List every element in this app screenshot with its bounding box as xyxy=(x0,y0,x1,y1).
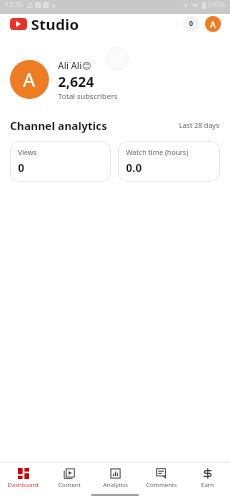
staticText: Studio xyxy=(31,14,79,34)
staticText: Last 28 days xyxy=(179,121,220,131)
staticText: 0 xyxy=(189,19,194,29)
staticText: Total subscribers xyxy=(58,91,118,101)
staticText: 12:35 xyxy=(5,0,23,10)
button[interactable]: Earn xyxy=(184,463,230,489)
button[interactable]: Notifications xyxy=(183,16,199,32)
staticText: A xyxy=(210,18,216,30)
button[interactable]: Dashboard xyxy=(0,463,46,489)
staticText: 0 xyxy=(18,160,25,175)
button[interactable]: Content xyxy=(46,463,92,489)
staticText: Channel analytics xyxy=(10,118,107,133)
staticText: 2,624 xyxy=(58,72,95,91)
staticText: Analytics xyxy=(103,481,128,489)
button[interactable]: Views xyxy=(10,141,111,182)
staticText: Dashboard xyxy=(7,481,39,489)
button[interactable]: Analytics xyxy=(92,463,138,489)
staticText: 100% xyxy=(207,0,225,10)
staticText: Watch time (hours) xyxy=(126,148,189,158)
staticText: Ali Ali😊 xyxy=(58,59,92,71)
button[interactable]: A xyxy=(0,46,230,102)
staticText: 0.0 xyxy=(126,160,142,175)
staticText: Comments xyxy=(146,481,177,489)
button[interactable]: Watch time (hours) xyxy=(118,141,220,182)
button[interactable]: Comments xyxy=(138,463,184,489)
staticText: Views xyxy=(18,148,37,158)
staticText: Earn xyxy=(201,481,214,489)
staticText: Content xyxy=(58,481,81,489)
staticText: A xyxy=(23,67,36,93)
button[interactable]: Account xyxy=(205,16,221,32)
